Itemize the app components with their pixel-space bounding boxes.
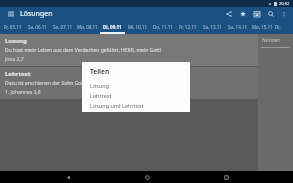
staticText: Losung bbox=[5, 37, 27, 45]
staticText: So, 07.11 bbox=[53, 24, 73, 30]
staticText: Di, 16.11 bbox=[275, 24, 293, 30]
button[interactable]: Back bbox=[62, 171, 74, 183]
staticText: Lösung bbox=[90, 82, 110, 89]
button[interactable]: Fr, 12.11 bbox=[175, 20, 200, 34]
button[interactable]: Mo, 15.11 bbox=[250, 20, 275, 34]
staticText: So, 14.11 bbox=[228, 24, 248, 30]
button[interactable]: Lehrtext bbox=[0, 67, 258, 99]
button[interactable]: Lösung und Lehrtext bbox=[82, 100, 190, 110]
staticText: Lösung und Lehrtext bbox=[90, 102, 144, 109]
staticText: Do, 11.11 bbox=[153, 24, 173, 30]
button[interactable]: Lösung bbox=[82, 80, 190, 90]
button[interactable]: Navigation menu bbox=[6, 9, 15, 18]
button[interactable]: Mi, 10.11 bbox=[125, 20, 150, 34]
button[interactable]: Mo, 08.11 bbox=[75, 20, 100, 34]
staticText: Mo, 08.11 bbox=[77, 24, 98, 30]
button[interactable]: Share bbox=[223, 8, 234, 19]
button[interactable]: Sa, 13.11 bbox=[200, 20, 225, 34]
staticText: Lösungen bbox=[20, 9, 53, 19]
button[interactable]: Sa, 06.11 bbox=[25, 20, 50, 34]
button[interactable]: Lehrtext bbox=[82, 90, 190, 100]
button[interactable]: Losung bbox=[0, 34, 258, 66]
staticText: Mi, 10.11 bbox=[128, 24, 148, 30]
button[interactable]: So, 07.11 bbox=[50, 20, 75, 34]
staticText: 1. Johannes 3,8 bbox=[5, 89, 41, 96]
button[interactable]: Favorite bbox=[237, 8, 248, 19]
staticText: Fr, 05.11 bbox=[4, 24, 22, 30]
staticText: Jona 2,7 bbox=[5, 56, 24, 63]
staticText: Mo, 15.11 bbox=[252, 24, 273, 30]
staticText: Fr, 12.11 bbox=[179, 24, 197, 30]
staticText: Sa, 06.11 bbox=[28, 24, 47, 30]
staticText: Lehrtext bbox=[5, 70, 31, 78]
button[interactable]: More options bbox=[278, 8, 289, 19]
button[interactable]: Search bbox=[265, 8, 276, 19]
button[interactable]: Recent apps bbox=[220, 171, 232, 183]
button[interactable]: Di, 16.11 bbox=[275, 20, 293, 34]
button[interactable]: Home bbox=[141, 171, 153, 183]
staticText: Sa, 13.11 bbox=[203, 24, 222, 30]
staticText: Lehrtext bbox=[90, 92, 112, 99]
staticText: Notizen bbox=[262, 37, 281, 44]
button[interactable]: Di, 09.11 bbox=[100, 20, 125, 34]
button[interactable]: Calendar bbox=[251, 8, 262, 19]
button[interactable]: So, 14.11 bbox=[225, 20, 250, 34]
staticText: 20:52 bbox=[279, 1, 290, 6]
staticText: Teilen bbox=[90, 67, 110, 76]
staticText: Du hast mein Leben aus dem Verderben gef… bbox=[5, 47, 162, 54]
button[interactable]: Do, 11.11 bbox=[150, 20, 175, 34]
staticText: Di, 09.11 bbox=[103, 24, 122, 30]
staticText: Dazu ist erschienen der Sohn Gottes, das… bbox=[5, 80, 184, 87]
button[interactable]: Fr, 05.11 bbox=[0, 20, 25, 34]
